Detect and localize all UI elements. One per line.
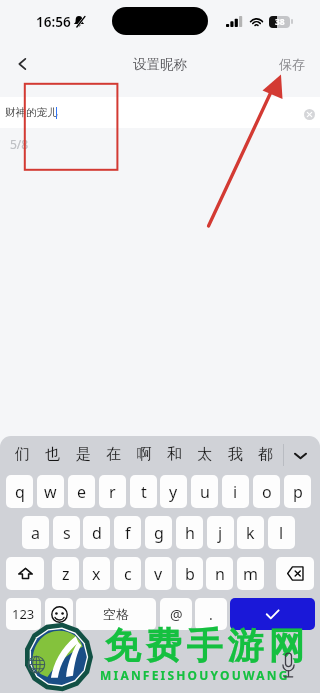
staticText: @ [170, 605, 183, 624]
button[interactable]: 是 [68, 436, 98, 473]
button[interactable]: 保存 [279, 42, 305, 86]
staticText: w [44, 481, 57, 503]
staticText: u [200, 481, 210, 503]
button[interactable]: 我 [220, 436, 250, 473]
staticText: 在 [106, 445, 121, 464]
staticText: s [63, 522, 71, 544]
button[interactable]: 和 [159, 436, 189, 473]
button[interactable]: d [83, 516, 110, 549]
staticText: 38 [275, 16, 285, 28]
button[interactable]: 也 [37, 436, 67, 473]
button[interactable]: i [222, 475, 249, 508]
staticText: x [92, 563, 101, 585]
button[interactable]: Clear text [299, 103, 319, 123]
button[interactable]: o [253, 475, 280, 508]
button[interactable]: w [37, 475, 64, 508]
staticText: 设置昵称 [133, 56, 187, 73]
staticText: h [185, 522, 195, 544]
staticText: 们 [15, 445, 30, 464]
button[interactable]: g [145, 516, 172, 549]
staticText: r [109, 481, 116, 503]
staticText: . [209, 605, 213, 624]
staticText: 123 [12, 605, 35, 623]
staticText: p [293, 481, 303, 503]
button[interactable]: a [22, 516, 49, 549]
button[interactable]: h [176, 516, 203, 549]
button[interactable]: Hide keyboard suggestions [284, 437, 316, 474]
button[interactable]: p [284, 475, 311, 508]
staticText: b [185, 563, 195, 585]
button[interactable]: Emoji [45, 598, 73, 630]
button[interactable]: 啊 [129, 436, 159, 473]
staticText: j [218, 522, 223, 544]
button[interactable]: @ [160, 598, 192, 630]
button[interactable]: l [268, 516, 295, 549]
staticText: 空格 [103, 606, 129, 622]
staticText: z [62, 563, 70, 585]
button[interactable]: q [6, 475, 33, 508]
button[interactable]: e [68, 475, 95, 508]
staticText: 财神的宠儿 [5, 106, 58, 119]
staticText: g [154, 522, 164, 544]
button[interactable]: 们 [7, 436, 37, 473]
button[interactable]: y [160, 475, 187, 508]
staticText: v [154, 563, 163, 585]
staticText: i [233, 481, 238, 503]
button[interactable]: r [99, 475, 126, 508]
button[interactable]: 太 [189, 436, 219, 473]
staticText: d [92, 522, 102, 544]
button[interactable]: c [114, 557, 141, 590]
staticText: f [125, 522, 131, 544]
button[interactable]: s [53, 516, 80, 549]
button[interactable]: v [145, 557, 172, 590]
staticText: 和 [167, 445, 182, 464]
staticText: q [15, 481, 25, 503]
button[interactable]: b [176, 557, 203, 590]
staticText: c [124, 563, 132, 585]
button[interactable]: 在 [98, 436, 128, 473]
button[interactable]: 空格 [76, 598, 156, 630]
button[interactable]: t [130, 475, 157, 508]
staticText: 太 [197, 445, 212, 464]
staticText: m [243, 563, 258, 585]
staticText: k [246, 522, 255, 544]
button[interactable]: j [207, 516, 234, 549]
staticText: 是 [76, 445, 91, 464]
staticText: 也 [45, 445, 60, 464]
staticText: o [262, 481, 272, 503]
staticText: 我 [228, 445, 243, 464]
button[interactable]: Confirm [230, 598, 315, 630]
button[interactable]: Shift [6, 557, 44, 590]
button[interactable]: k [237, 516, 264, 549]
staticText: 16:56 [36, 13, 71, 31]
button[interactable]: 123 [6, 598, 41, 630]
staticText: l [279, 522, 284, 544]
button[interactable]: x [83, 557, 110, 590]
staticText: a [31, 522, 40, 544]
staticText: y [169, 481, 178, 503]
staticText: 免费手游网 [102, 623, 307, 668]
button[interactable]: z [52, 557, 79, 590]
staticText: e [77, 481, 87, 503]
staticText: t [141, 481, 147, 503]
button[interactable]: u [191, 475, 218, 508]
staticText: 都 [258, 445, 273, 464]
button[interactable]: Backspace [276, 557, 314, 590]
button[interactable]: m [237, 557, 264, 590]
button[interactable]: f [114, 516, 141, 549]
staticText: n [215, 563, 225, 585]
staticText: 5/8 [10, 136, 29, 152]
staticText: 保存 [279, 56, 305, 72]
button[interactable]: n [206, 557, 233, 590]
button[interactable]: 都 [250, 436, 280, 473]
staticText: 啊 [137, 445, 152, 464]
staticText: MIANFEISHOUYOUWANG [100, 667, 290, 683]
button[interactable]: . [195, 598, 227, 630]
button[interactable]: Back [0, 44, 46, 88]
